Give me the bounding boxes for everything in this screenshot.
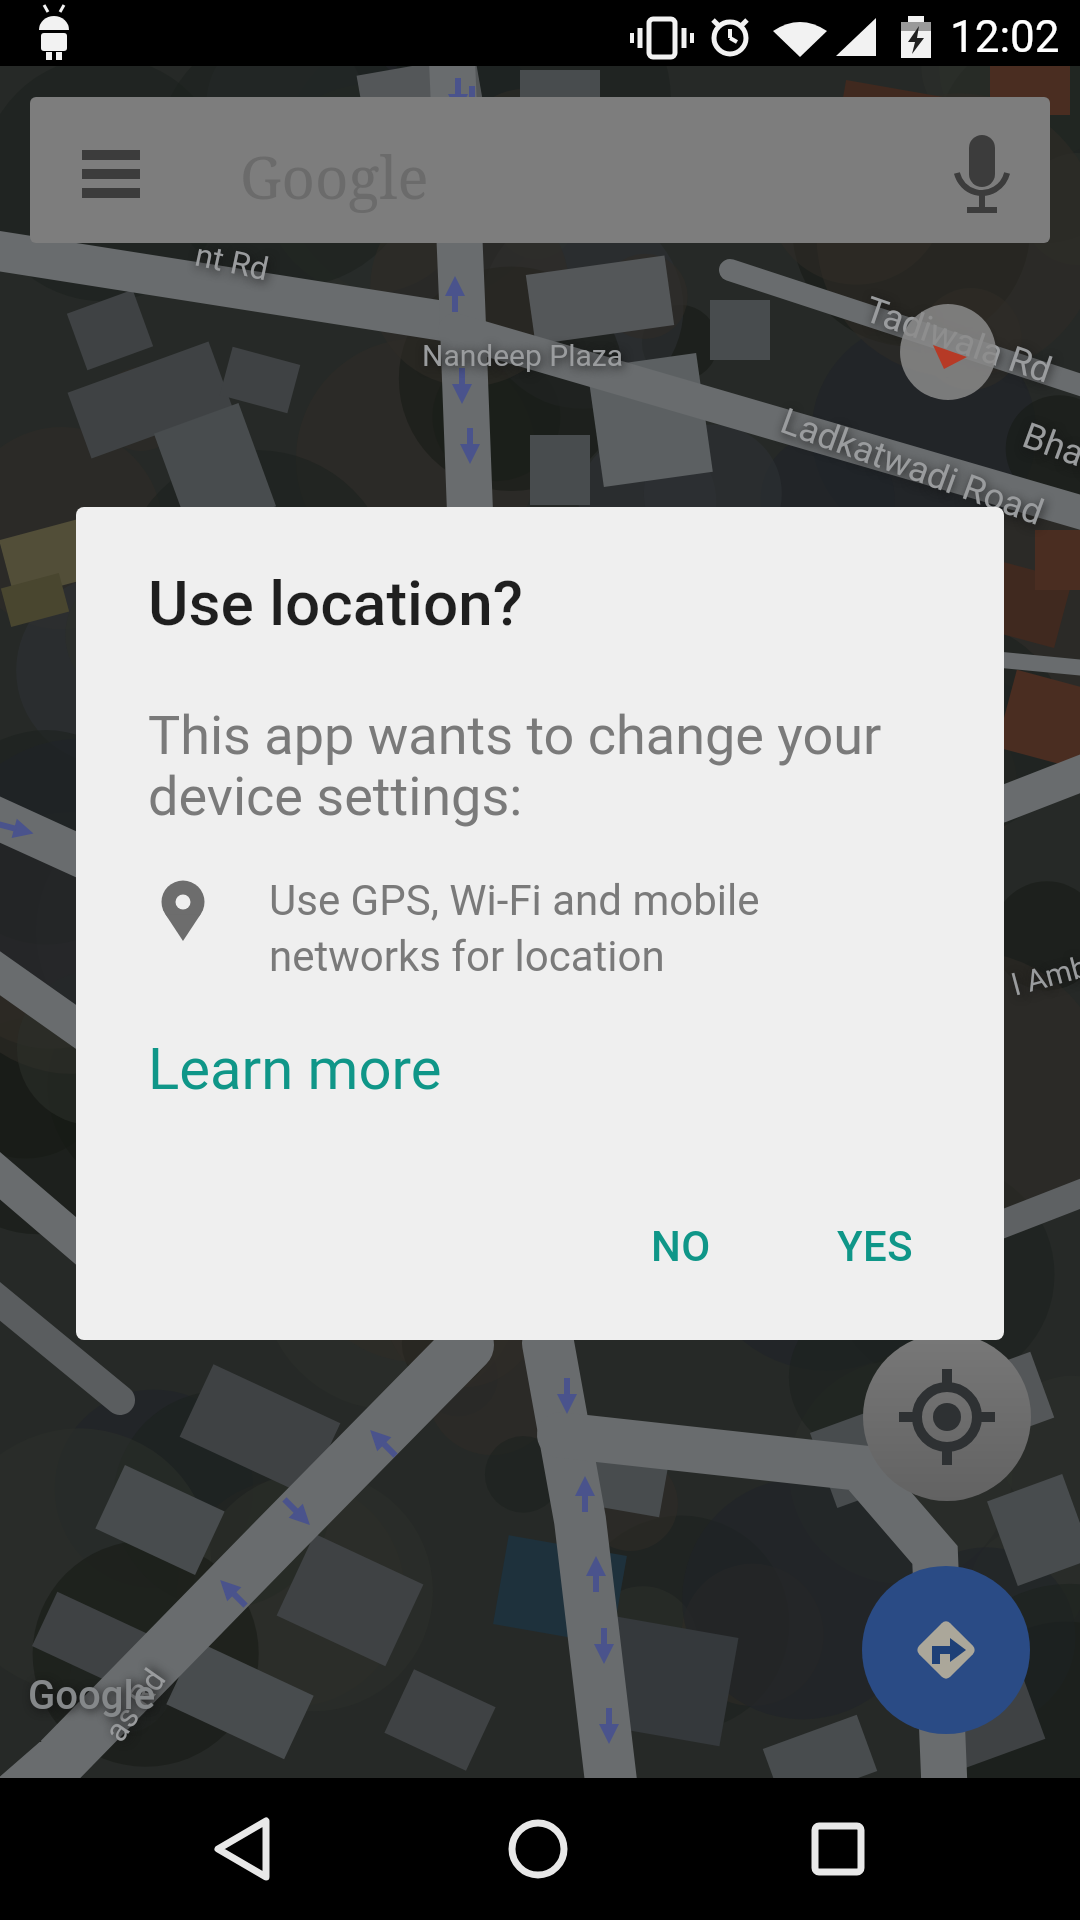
staticText: Google [28,1672,156,1719]
staticText: as Rd [96,1661,173,1749]
staticText: Ladkatwadi Road [775,400,1050,534]
staticText: Use location? [148,567,523,640]
button[interactable]: NO [611,1198,751,1294]
button[interactable] [863,1333,1031,1501]
button[interactable] [720,1778,1080,1920]
button[interactable] [360,1778,720,1920]
staticText: nt Rd [192,236,272,288]
staticText: NO [651,1222,711,1271]
button[interactable]: Learn more [132,1017,432,1109]
staticText: Google [240,137,429,216]
button[interactable] [0,1778,360,1920]
button[interactable]: YES [805,1198,945,1294]
staticText: Bhas [1017,415,1080,482]
staticText: l Amb [1008,948,1080,1002]
staticText: Use GPS, Wi-Fi and mobile networks for l… [269,876,760,982]
button[interactable] [862,1566,1030,1734]
staticText: Learn more [148,1035,442,1103]
staticText: YES [837,1222,914,1271]
staticText: Nandeep Plaza [422,338,624,373]
button[interactable]: Google [30,97,1050,243]
staticText: Tadiwala Rd [859,289,1057,392]
staticText: This app wants to change your device set… [148,704,882,828]
staticText: 12:02 [950,11,1060,63]
